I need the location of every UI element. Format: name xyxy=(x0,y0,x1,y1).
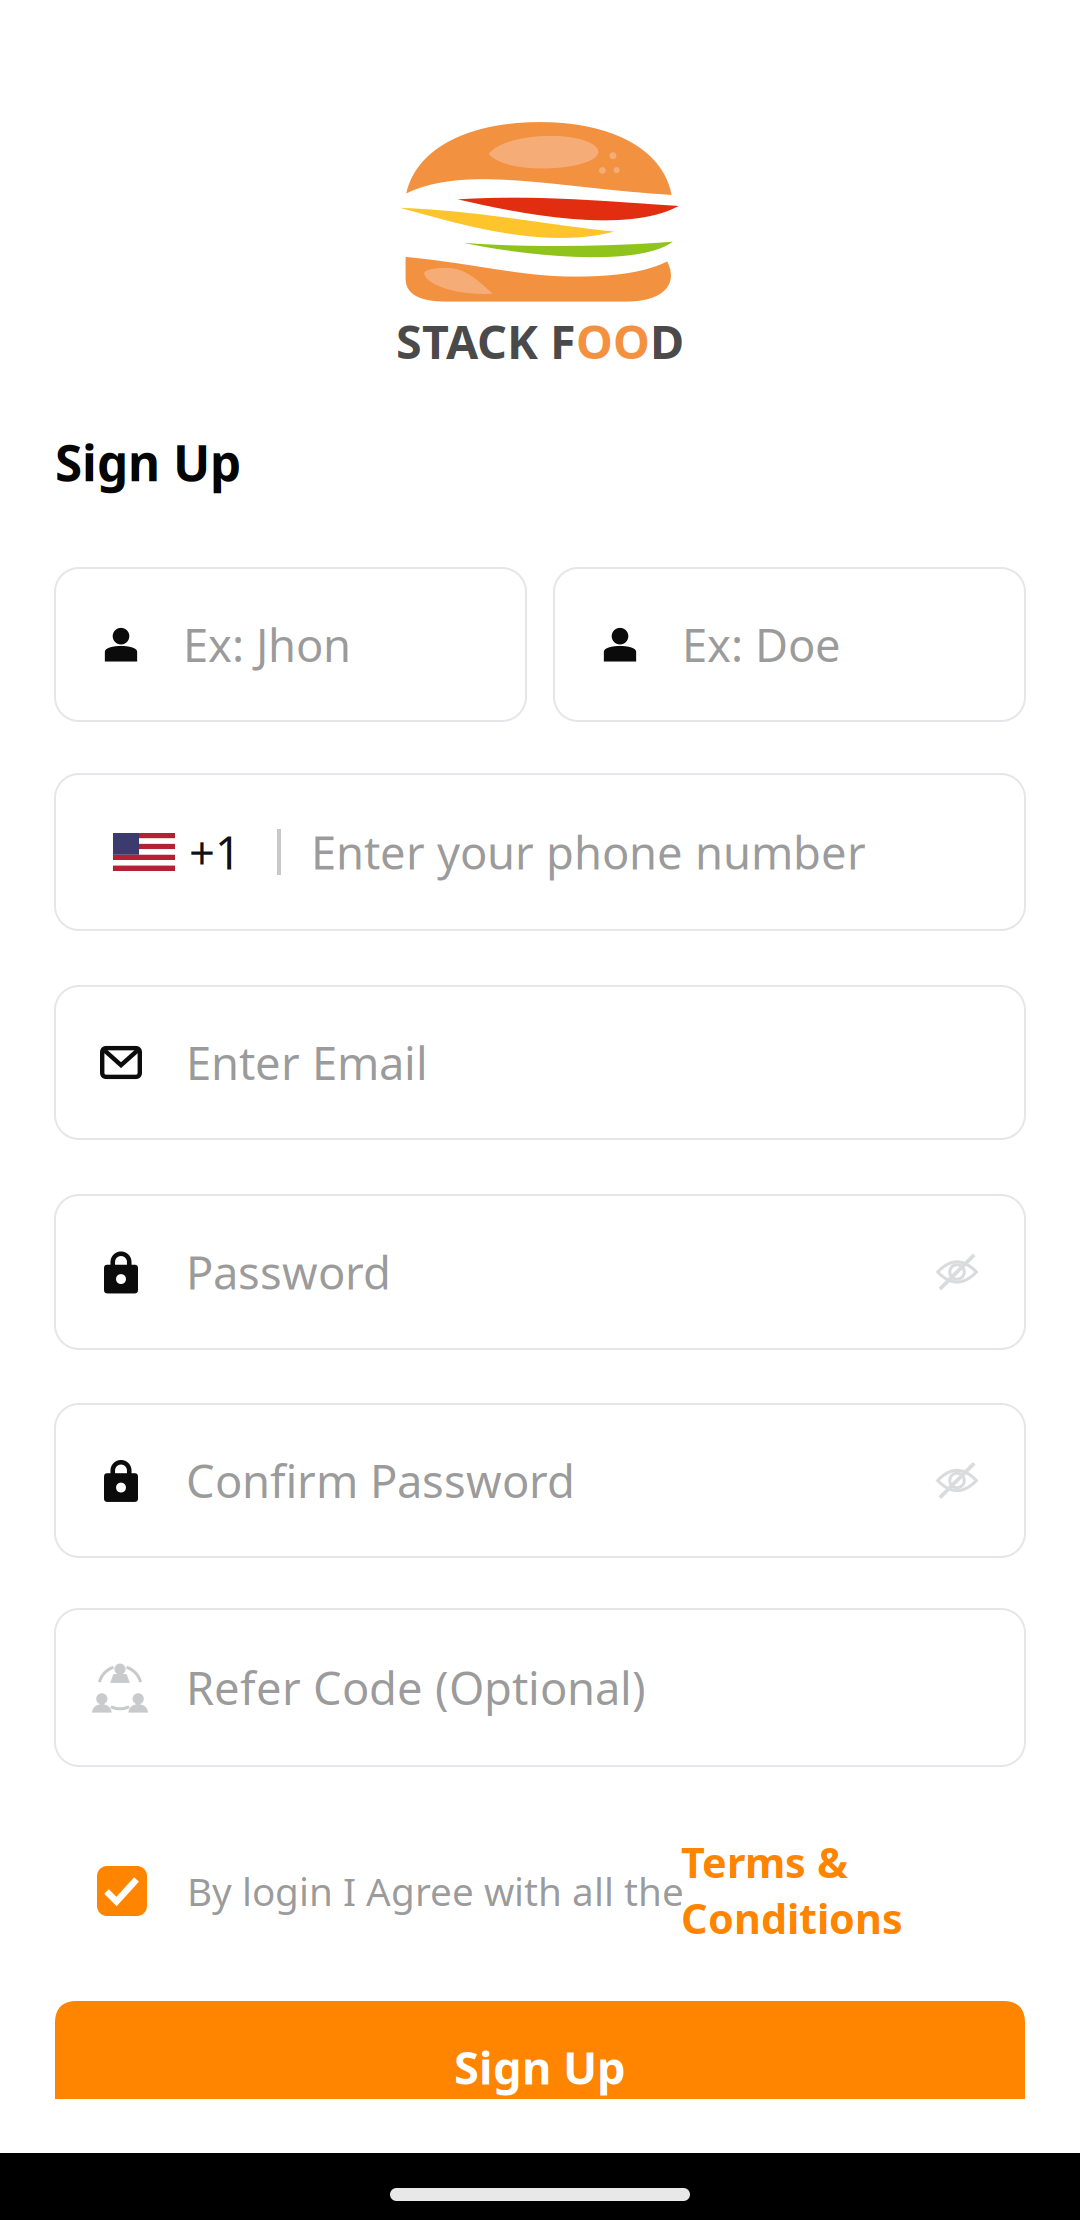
button[interactable]: Refer Code (Optional) xyxy=(55,1609,1025,1766)
button[interactable]: Sign Up xyxy=(55,2001,1025,2099)
staticText: Password xyxy=(186,1242,391,1302)
button[interactable]: Terms & xyxy=(681,1838,1011,1942)
button[interactable]: Password xyxy=(55,1195,1025,1349)
staticText: STACK F xyxy=(396,310,576,372)
button[interactable]: +1 xyxy=(55,774,1025,930)
staticText: Ex: Jhon xyxy=(183,614,351,675)
staticText: Ex: Doe xyxy=(682,614,841,675)
staticText: +1 xyxy=(189,822,241,882)
button[interactable]: Ex: Jhon xyxy=(55,568,526,721)
staticText: D xyxy=(650,310,684,372)
staticText: Refer Code (Optional) xyxy=(186,1657,646,1718)
staticText: Sign Up xyxy=(55,429,241,495)
button[interactable]: Ex: Doe xyxy=(554,568,1025,721)
button[interactable]: Agree to the terms and conditions xyxy=(97,1866,147,1916)
staticText: OO xyxy=(576,310,650,372)
staticText: Terms & xyxy=(681,1835,848,1889)
staticText: Sign Up xyxy=(454,2037,626,2097)
staticText: Enter your phone number xyxy=(311,822,866,882)
button[interactable]: Confirm Password xyxy=(55,1404,1025,1557)
staticText: Conditions xyxy=(681,1891,903,1945)
staticText: By login I Agree with all the xyxy=(187,1865,684,1917)
button[interactable]: Enter Email xyxy=(55,986,1025,1139)
staticText: Confirm Password xyxy=(186,1450,575,1511)
staticText: Enter Email xyxy=(186,1032,428,1093)
